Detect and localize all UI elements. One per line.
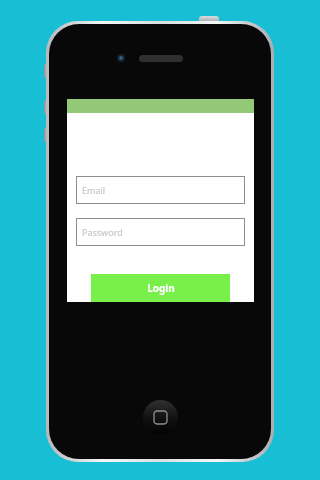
button[interactable]: Power	[199, 16, 219, 23]
button[interactable]: Email	[76, 176, 245, 204]
staticText: Login	[147, 281, 175, 295]
button[interactable]: Home	[143, 400, 178, 435]
button[interactable]: Login	[91, 274, 230, 302]
staticText: Password	[82, 226, 123, 238]
button[interactable]: Password	[76, 218, 245, 246]
staticText: Email	[82, 184, 106, 196]
